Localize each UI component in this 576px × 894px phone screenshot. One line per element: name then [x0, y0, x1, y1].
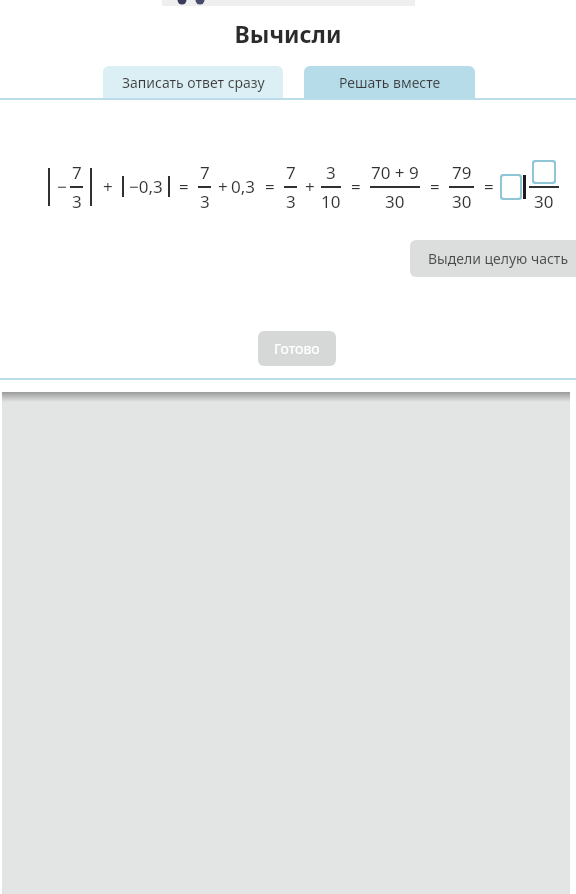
- staticText: −0,3: [129, 175, 163, 198]
- staticText: =: [484, 175, 494, 198]
- button[interactable]: Записать ответ сразу: [103, 66, 283, 98]
- staticText: 30: [385, 190, 405, 213]
- staticText: =: [430, 175, 440, 198]
- staticText: −: [57, 175, 67, 198]
- staticText: 70 + 9: [371, 161, 419, 184]
- staticText: Решать вместе: [339, 73, 441, 92]
- staticText: 10: [321, 190, 341, 213]
- staticText: 30: [534, 190, 554, 213]
- staticText: 3: [286, 190, 296, 213]
- button[interactable]: Выдели целую часть: [410, 240, 576, 277]
- staticText: =: [265, 175, 275, 198]
- staticText: 0,3: [231, 175, 256, 198]
- staticText: 3: [326, 161, 336, 184]
- staticText: 79: [452, 161, 472, 184]
- staticText: +: [218, 175, 228, 198]
- staticText: Выдели целую часть: [428, 249, 569, 268]
- staticText: 7: [72, 161, 82, 184]
- button[interactable]: Answer input: [534, 162, 554, 182]
- button[interactable]: Решать вместе: [304, 66, 475, 98]
- staticText: Записать ответ сразу: [122, 73, 265, 92]
- staticText: =: [179, 175, 189, 198]
- staticText: 3: [72, 190, 82, 213]
- staticText: Вычисли: [0, 18, 576, 49]
- staticText: +: [103, 175, 113, 198]
- button[interactable]: Готово: [258, 331, 336, 366]
- staticText: 3: [200, 190, 210, 213]
- staticText: +: [305, 175, 315, 198]
- staticText: Готово: [274, 339, 320, 358]
- staticText: 7: [286, 161, 296, 184]
- staticText: =: [351, 175, 361, 198]
- staticText: 7: [200, 161, 210, 184]
- staticText: 30: [452, 190, 472, 213]
- button[interactable]: Answer input: [502, 176, 520, 198]
